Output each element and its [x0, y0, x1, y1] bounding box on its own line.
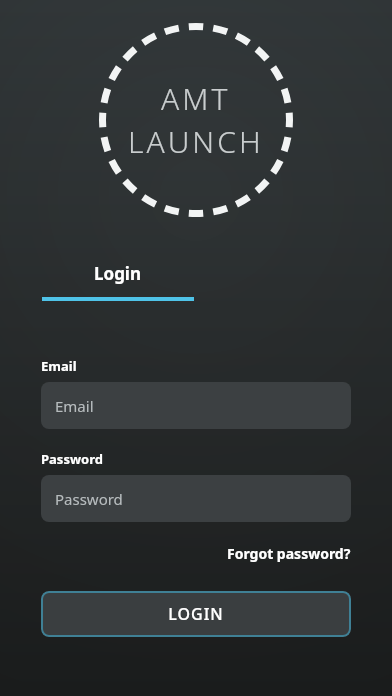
button[interactable]: Email: [41, 382, 351, 429]
staticText: LAUNCH: [128, 121, 264, 162]
staticText: Password: [41, 450, 103, 468]
staticText: AMT: [161, 78, 231, 119]
staticText: Email: [41, 357, 77, 375]
staticText: Password: [55, 489, 123, 509]
staticText: Forgot password?: [227, 544, 351, 563]
button[interactable]: Forgot password?: [227, 544, 351, 563]
button[interactable]: Login: [42, 236, 194, 301]
button[interactable]: LOGIN: [41, 591, 351, 637]
button[interactable]: Password: [41, 475, 351, 522]
staticText: Email: [55, 396, 94, 416]
staticText: Login: [94, 262, 142, 285]
staticText: LOGIN: [168, 603, 224, 625]
